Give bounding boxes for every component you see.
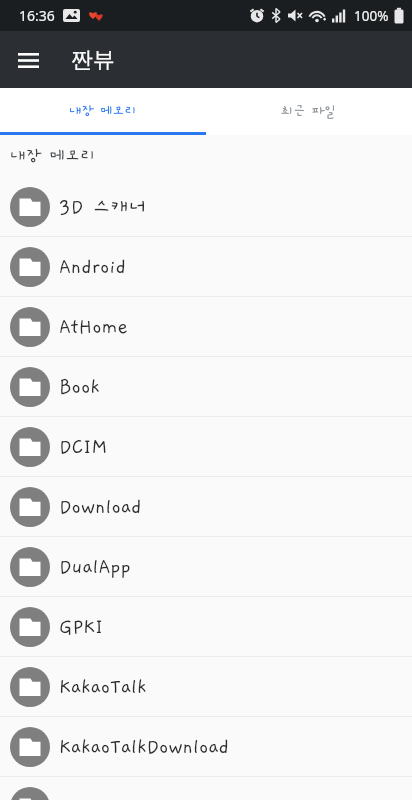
staticText: 내장 메모리 bbox=[69, 104, 137, 119]
staticText: 짠뷰 bbox=[71, 46, 115, 74]
button[interactable]: 최근 파일 bbox=[206, 88, 412, 135]
button[interactable] bbox=[0, 32, 56, 88]
staticText: Book bbox=[59, 376, 100, 398]
staticText: KakaoTalkDownload bbox=[59, 736, 229, 758]
button[interactable]: GPKI bbox=[0, 597, 412, 657]
staticText: DCIM bbox=[59, 436, 108, 458]
button[interactable]: AtHome bbox=[0, 297, 412, 357]
button[interactable]: 내장 메모리 bbox=[0, 88, 206, 135]
staticText: Download bbox=[59, 496, 142, 518]
staticText: 3D 스캐너 bbox=[59, 196, 147, 218]
button[interactable]: DCIM bbox=[0, 417, 412, 477]
button[interactable]: 3D 스캐너 bbox=[0, 177, 412, 237]
button[interactable]: Download bbox=[0, 477, 412, 537]
staticText: AtHome bbox=[59, 316, 129, 338]
staticText: 최근 파일 bbox=[281, 104, 337, 119]
staticText: Android bbox=[59, 256, 127, 278]
staticText: GPKI bbox=[59, 616, 103, 638]
staticText: 100% bbox=[354, 7, 389, 25]
button[interactable]: KakaoTalkDownload bbox=[0, 717, 412, 777]
button[interactable]: DualApp bbox=[0, 537, 412, 597]
staticText: 16:36 bbox=[19, 6, 55, 25]
button[interactable]: KakaoTalk bbox=[0, 657, 412, 717]
staticText: KakaoTalk bbox=[59, 676, 147, 698]
button[interactable]: Android bbox=[0, 237, 412, 297]
button[interactable]: Movies bbox=[0, 777, 412, 800]
staticText: 내장 메모리 bbox=[10, 147, 96, 166]
staticText: DualApp bbox=[59, 556, 131, 578]
button[interactable]: Book bbox=[0, 357, 412, 417]
